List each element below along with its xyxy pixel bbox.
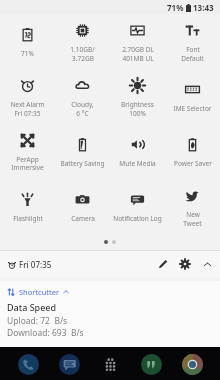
button[interactable]: Power Saver [165,124,220,179]
button[interactable]: 1.10GB/ [55,14,110,69]
staticText: 1.10GB/ [70,45,95,54]
button[interactable]: Brightness [110,69,165,124]
staticText: Fri 07:35 [19,259,52,270]
staticText: Upload: 72 B/s [7,315,68,327]
button[interactable]: Mute Media [110,124,165,179]
staticText: PerApp Immersive [0,155,55,172]
staticText: 2.70GB DL [122,45,154,54]
button[interactable]: 71% [0,14,55,69]
button[interactable]: Phone [15,351,41,377]
staticText: New [186,210,200,219]
button[interactable]: Fri 07:35 [8,259,52,270]
staticText: Shortcutter [19,287,60,297]
staticText: 71% [21,49,34,58]
staticText: 71% [167,2,184,13]
button[interactable]: Collapse [196,253,218,275]
button[interactable]: Next Alarm [0,69,55,124]
staticText: Brightness [121,100,154,109]
button[interactable]: Edit tiles [152,253,174,275]
staticText: Camera [71,214,95,223]
staticText: 100% [129,109,146,118]
button[interactable]: Notification Log [110,179,165,234]
staticText: Next Alarm [10,100,45,109]
button[interactable]: 2.70GB DL [110,14,165,69]
staticText: Font [186,45,200,54]
staticText: Data Speed [7,301,57,313]
button[interactable]: Font [165,14,220,69]
staticText: 13:43 [193,2,214,13]
button[interactable]: Chrome [179,351,205,377]
button[interactable]: All apps [97,351,123,377]
staticText: Notification Log [113,214,162,223]
button[interactable]: PerApp Immersive [0,124,55,179]
staticText: 3.72GB [72,54,94,63]
button[interactable]: Shortcutter [0,281,220,347]
button[interactable]: Battery Saving [55,124,110,179]
staticText: Default [181,54,204,63]
staticText: IME Selector [173,104,212,113]
staticText: Mute Media [119,159,156,168]
staticText: Flashlight [13,214,43,223]
button[interactable]: Flashlight [0,179,55,234]
button[interactable]: IME Selector [165,69,220,124]
button[interactable]: Cloudy, [55,69,110,124]
button[interactable]: Camera [55,179,110,234]
button[interactable]: Settings [174,253,196,275]
button[interactable]: New [165,179,220,234]
button[interactable]: Messages [56,351,82,377]
staticText: Cloudy, [71,100,94,109]
button[interactable]: Hangouts [138,351,164,377]
staticText: Download: 693 B/s [7,327,84,339]
staticText: 6 °C [76,109,89,118]
staticText: Fri 07:35 [14,109,41,118]
staticText: Tweet [183,219,202,228]
staticText: Power Saver [174,159,212,168]
staticText: 401MB UL [122,54,154,63]
staticText: Battery Saving [60,159,105,168]
